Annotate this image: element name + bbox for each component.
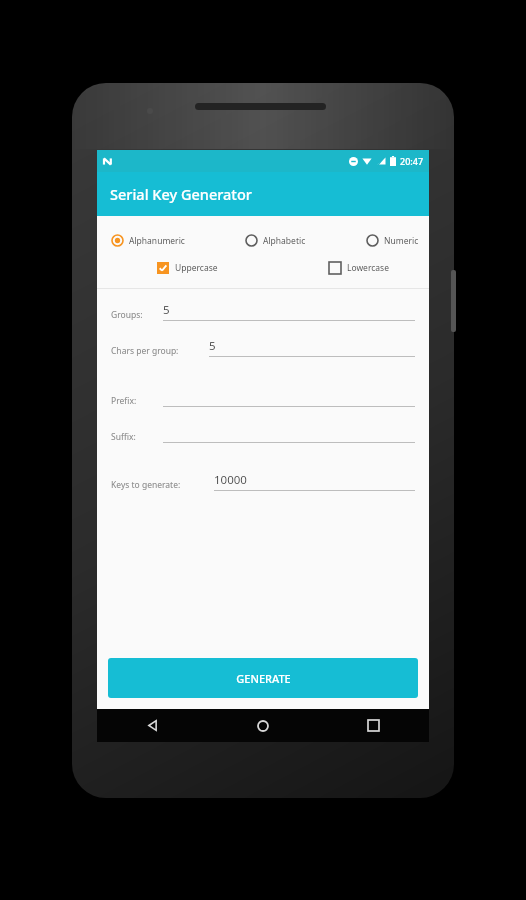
button[interactable]: Numeric — [366, 234, 419, 247]
staticText: Alphabetic — [263, 235, 306, 247]
staticText: Groups: — [111, 309, 143, 321]
button[interactable]: Back — [97, 709, 207, 742]
staticText: Prefix: — [111, 395, 137, 407]
staticText: Uppercase — [175, 262, 218, 274]
button[interactable]: Lowercase — [329, 262, 389, 274]
button[interactable]: Suffix: — [111, 423, 415, 443]
button[interactable]: Alphabetic — [245, 234, 306, 247]
button[interactable]: Recent apps — [318, 709, 429, 742]
button[interactable]: Alphanumeric — [111, 234, 185, 247]
button[interactable]: Chars per group: — [111, 337, 415, 357]
staticText: Lowercase — [347, 262, 389, 274]
staticText: 20:47 — [400, 155, 424, 167]
staticText: Keys to generate: — [111, 479, 181, 491]
button[interactable]: Prefix: — [111, 387, 415, 407]
staticText: 5 — [209, 338, 216, 354]
staticText: Serial Key Generator — [110, 184, 252, 204]
staticText: 10000 — [214, 472, 247, 488]
staticText: 5 — [163, 302, 170, 318]
staticText: Alphanumeric — [129, 235, 185, 247]
staticText: Numeric — [384, 235, 419, 247]
staticText: GENERATE — [236, 671, 291, 686]
staticText: Suffix: — [111, 431, 136, 443]
button[interactable]: GENERATE — [108, 658, 418, 698]
button[interactable]: Groups: — [111, 301, 415, 321]
button[interactable]: Keys to generate: — [111, 471, 415, 491]
button[interactable]: Uppercase — [157, 262, 218, 274]
staticText: Chars per group: — [111, 345, 179, 357]
button[interactable]: Home — [207, 709, 318, 742]
